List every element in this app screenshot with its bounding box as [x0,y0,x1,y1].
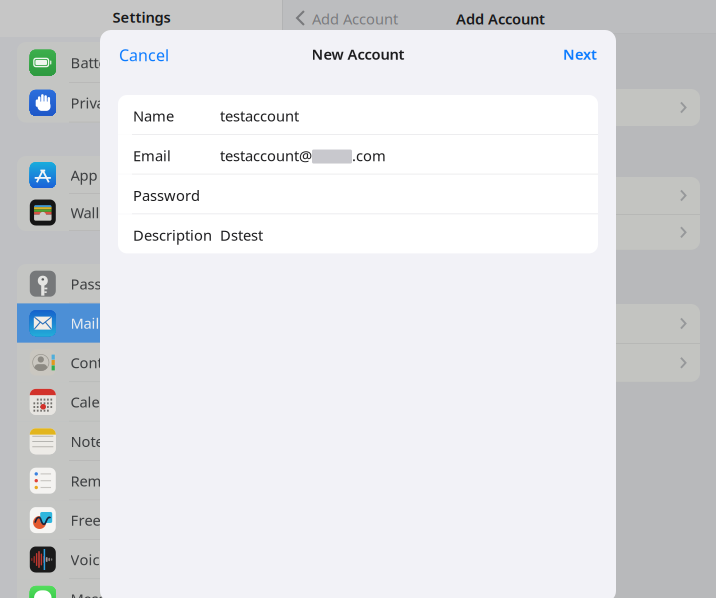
button[interactable]: Privacy & Security [17,83,265,122]
button[interactable]: Freeform [17,500,265,540]
button[interactable]: Voice Memos [17,540,265,579]
staticText: Cancel [119,44,169,66]
staticText: Password [133,186,200,205]
staticText: Passwords [70,274,144,293]
button[interactable]: Battery [17,42,265,83]
button[interactable]: Reminders [17,461,265,500]
staticText: Description [133,225,212,245]
button[interactable]: Notes [17,422,265,461]
button[interactable]: Password [118,175,598,214]
button[interactable]: Messages [17,579,265,598]
staticText: Email [133,146,171,165]
staticText: Freeform [70,510,134,530]
staticText: Contacts [70,353,129,372]
staticText: Mail [70,313,99,333]
staticText: testaccount [220,106,299,125]
button[interactable]: Next [537,32,597,76]
staticText: Voice Memos [70,550,162,569]
button[interactable]: Cancel [119,33,191,77]
button[interactable]: Account setting [299,344,700,382]
staticText: Dstest [220,225,263,245]
staticText: Privacy & Security [70,93,191,112]
staticText: Calendar [70,392,131,412]
button[interactable]: Calendar [17,382,265,422]
button[interactable]: Account setting [299,89,700,126]
staticText: Next [563,44,597,64]
staticText: Reminders [70,471,144,490]
button[interactable]: Email [118,135,598,174]
button[interactable]: Mail [17,303,265,343]
button[interactable]: Account setting [299,304,700,343]
staticText: Wallet & Apple Pay [70,203,198,222]
staticText: Add Account [312,9,398,28]
button[interactable]: Contacts [17,343,265,382]
staticText: App Store [70,165,137,185]
button[interactable]: Description [118,214,598,253]
staticText: .com [352,146,386,165]
staticText: Settings [112,7,170,27]
staticText: New Account [311,44,404,64]
button[interactable]: Name [118,95,598,134]
button[interactable]: Account setting [299,215,700,250]
staticText: Messages [70,589,137,598]
button[interactable]: App Store [17,156,265,194]
staticText: Add Account [456,9,545,28]
button[interactable]: Wallet & Apple Pay [17,194,265,231]
staticText: Notes [70,432,110,451]
button[interactable]: Passwords [17,264,265,303]
staticText: Battery [70,53,119,72]
button[interactable]: Account setting [299,177,700,214]
staticText: Name [133,106,174,125]
staticText: testaccount@ [220,146,312,165]
